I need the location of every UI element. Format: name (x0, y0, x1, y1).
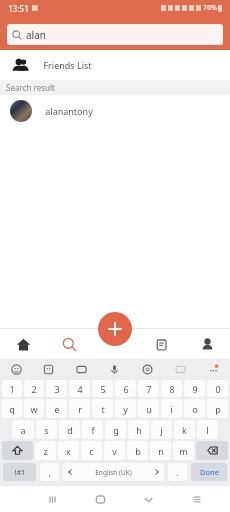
button[interactable]: x (58, 441, 79, 460)
button[interactable]: j (151, 420, 172, 439)
button[interactable]: m (173, 441, 194, 460)
staticText: p (215, 403, 221, 415)
staticText: g (113, 424, 119, 436)
button[interactable]: Notifications (138, 329, 184, 359)
staticText: English (UK) (95, 468, 132, 477)
button[interactable]: d (59, 420, 80, 439)
button[interactable]: a (12, 420, 34, 439)
staticText: v (112, 445, 117, 457)
button[interactable]: Shift (2, 441, 33, 460)
button[interactable]: 6 (115, 380, 136, 397)
button[interactable]: z (35, 441, 56, 460)
staticText: w (30, 403, 38, 415)
staticText: 76% (203, 3, 217, 13)
staticText: 5 (100, 383, 106, 395)
button[interactable]: w (24, 399, 44, 418)
staticText: d (67, 424, 73, 436)
staticText: 7 (146, 383, 152, 395)
button[interactable]: 7 (138, 380, 159, 397)
staticText: f (91, 424, 95, 436)
button[interactable]: i (161, 399, 182, 418)
button[interactable]: . (168, 463, 187, 481)
staticText: r (78, 403, 82, 415)
button[interactable]: alanantony (0, 95, 230, 127)
staticText: z (43, 445, 48, 457)
button[interactable]: English (UK) (63, 463, 164, 481)
staticText: o (192, 403, 198, 415)
button[interactable]: s (36, 420, 57, 439)
button[interactable]: u (138, 399, 159, 418)
staticText: 1 (9, 383, 15, 395)
staticText: , (48, 467, 51, 478)
button[interactable]: 2 (24, 380, 44, 397)
button[interactable]: Done (191, 463, 227, 481)
staticText: q (9, 403, 15, 415)
button[interactable]: Profile (184, 329, 230, 359)
button[interactable]: , (40, 463, 59, 481)
staticText: 2 (31, 383, 37, 395)
button[interactable]: 0 (207, 380, 228, 397)
button[interactable]: Translate (164, 359, 197, 379)
button[interactable]: o (184, 399, 205, 418)
staticText: !#1 (14, 467, 26, 477)
button[interactable]: c (81, 441, 102, 460)
button[interactable]: y (115, 399, 136, 418)
button[interactable]: e (46, 399, 67, 418)
staticText: 0 (215, 383, 221, 395)
button[interactable]: t (92, 399, 113, 418)
button[interactable]: 8 (161, 380, 182, 397)
staticText: h (136, 424, 142, 436)
button[interactable]: 5 (92, 380, 113, 397)
button[interactable] (172, 486, 220, 512)
button[interactable]: Home (0, 329, 46, 359)
button[interactable]: n (150, 441, 171, 460)
button[interactable]: Friends List (0, 50, 230, 80)
staticText: l (206, 424, 209, 436)
button[interactable]: g (105, 420, 126, 439)
staticText: Friends List (43, 59, 92, 71)
button[interactable]: h (128, 420, 149, 439)
button[interactable]: r (69, 399, 90, 418)
staticText: c (89, 445, 94, 457)
button[interactable]: Sticker (32, 359, 65, 379)
staticText: n (158, 445, 164, 457)
staticText: i (170, 403, 173, 415)
button[interactable] (124, 486, 172, 512)
button[interactable]: !#1 (3, 463, 36, 481)
staticText: s (44, 424, 49, 436)
button[interactable]: p (207, 399, 228, 418)
button[interactable]: f (82, 420, 103, 439)
button[interactable]: alan (7, 24, 223, 45)
staticText: y (123, 403, 128, 415)
button[interactable]: GIF (65, 359, 98, 379)
button[interactable]: 4 (69, 380, 90, 397)
staticText: m (179, 445, 188, 457)
staticText: 9 (192, 383, 198, 395)
staticText: t (101, 403, 105, 415)
button[interactable] (28, 486, 76, 512)
staticText: Search result (6, 82, 55, 93)
button[interactable]: Settings (131, 359, 164, 379)
button[interactable]: More (197, 359, 230, 379)
button[interactable]: l (197, 420, 218, 439)
staticText: u (146, 403, 152, 415)
button[interactable]: Backspace (196, 441, 228, 460)
staticText: Done (200, 467, 219, 477)
staticText: alanantony (45, 105, 93, 117)
button[interactable]: 1 (2, 380, 22, 397)
button[interactable]: 9 (184, 380, 205, 397)
button[interactable]: b (127, 441, 148, 460)
staticText: 8 (169, 383, 175, 395)
button[interactable]: Search (46, 329, 92, 359)
button[interactable]: Add (98, 312, 132, 346)
staticText: 4 (77, 383, 83, 395)
staticText: 6 (123, 383, 129, 395)
staticText: 3 (54, 383, 60, 395)
button[interactable]: q (2, 399, 22, 418)
button[interactable]: Voice (98, 359, 131, 379)
button[interactable]: k (174, 420, 195, 439)
button[interactable] (76, 486, 124, 512)
button[interactable]: 3 (46, 380, 67, 397)
button[interactable]: Emoji (0, 359, 32, 379)
button[interactable]: v (104, 441, 125, 460)
